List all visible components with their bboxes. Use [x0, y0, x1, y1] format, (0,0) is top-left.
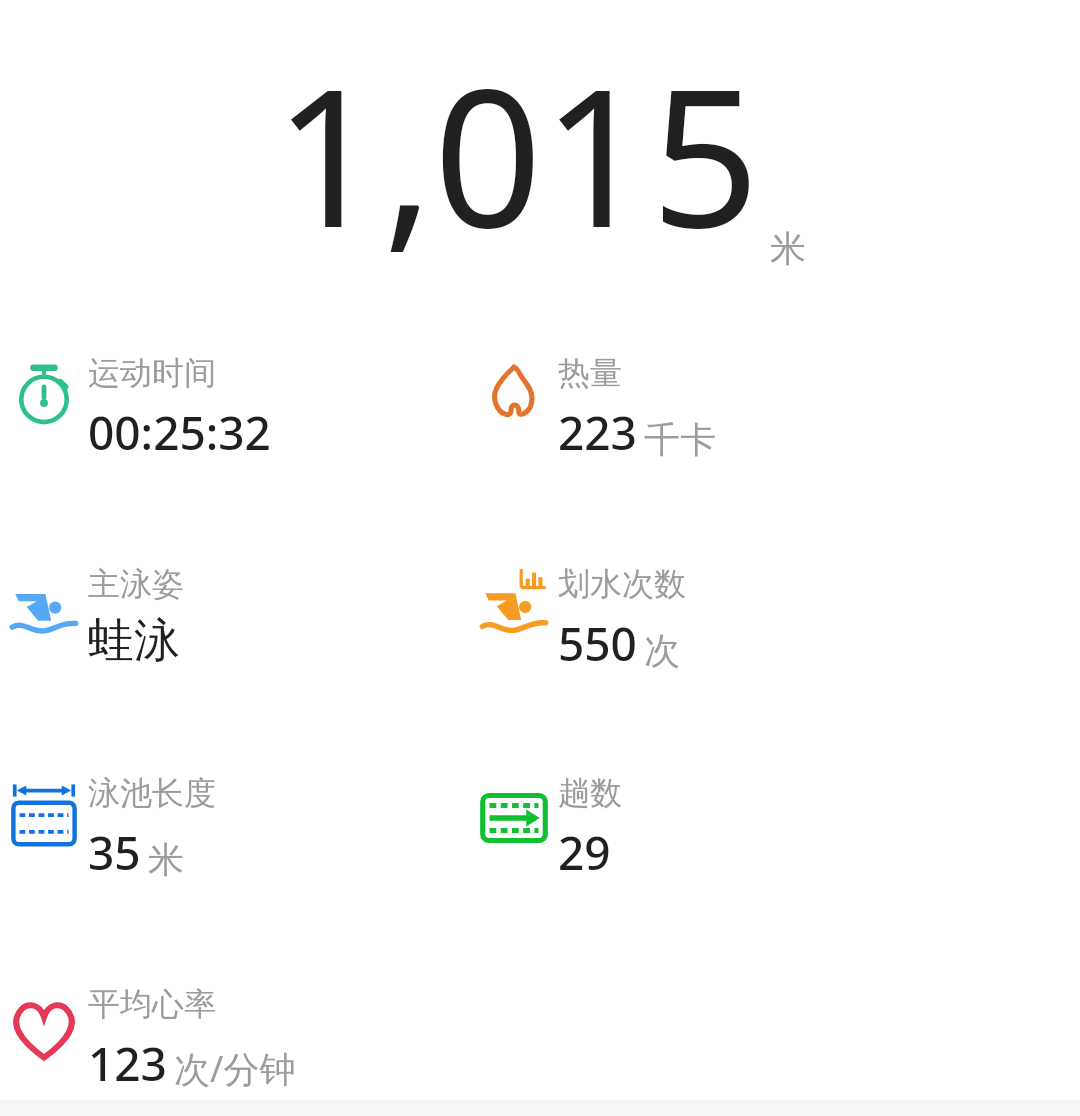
staticText: 35: [88, 821, 141, 884]
other: Laps: [480, 793, 548, 843]
staticText: 米: [770, 226, 806, 271]
other: Calories: [484, 361, 544, 433]
other: Pool length: [10, 781, 78, 853]
staticText: 次: [644, 628, 680, 673]
staticText: 热量: [558, 353, 622, 393]
staticText: 29: [558, 821, 611, 884]
staticText: 平均心率: [88, 984, 216, 1024]
other: Strokes: [478, 566, 550, 646]
button[interactable]: Stroke: [0, 564, 470, 670]
button[interactable]: Calories: [470, 353, 716, 464]
staticText: 划水次数: [558, 564, 686, 604]
other: Stroke: [8, 576, 80, 648]
staticText: 千卡: [644, 417, 716, 462]
button[interactable]: Laps: [470, 773, 622, 884]
staticText: 1,015: [274, 24, 760, 283]
staticText: 蛙泳: [88, 612, 180, 670]
staticText: 223: [558, 401, 637, 464]
staticText: 运动时间: [88, 353, 216, 393]
button[interactable]: Strokes: [470, 564, 686, 675]
button[interactable]: Average heart rate: [0, 984, 560, 1095]
other: Duration: [12, 361, 76, 433]
staticText: 次/分钟: [174, 1044, 296, 1093]
other: Average heart rate: [9, 996, 79, 1062]
staticText: 00:25:32: [88, 401, 271, 464]
button[interactable]: Pool length: [0, 773, 470, 884]
staticText: 123: [88, 1032, 167, 1095]
staticText: 趟数: [558, 773, 622, 813]
staticText: 550: [558, 612, 637, 675]
button[interactable]: Duration: [0, 353, 470, 464]
staticText: 米: [148, 837, 184, 882]
staticText: 主泳姿: [88, 564, 184, 604]
staticText: 泳池长度: [88, 773, 216, 813]
